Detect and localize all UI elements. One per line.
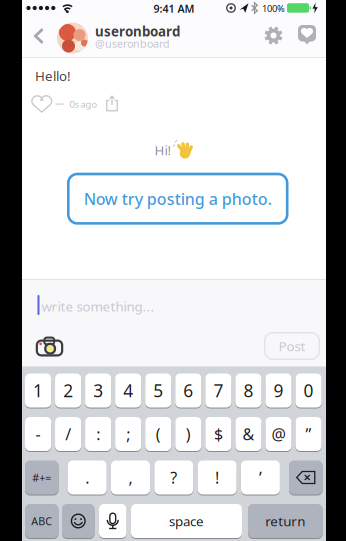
button[interactable]: /: [55, 416, 81, 451]
button[interactable]: 5: [145, 373, 171, 408]
staticText: Post: [278, 337, 305, 355]
staticText: @useronboard: [95, 36, 170, 51]
button[interactable]: 0: [295, 373, 322, 408]
staticText: Hello!: [35, 67, 71, 85]
button[interactable]: Like: [33, 96, 50, 112]
button[interactable]: ;: [115, 416, 141, 451]
staticText: 1: [33, 379, 43, 402]
staticText: &: [242, 423, 254, 445]
button[interactable]: Add photo: [34, 335, 63, 355]
button[interactable]: (: [145, 416, 171, 451]
staticText: 0s ago: [69, 98, 97, 110]
staticText: useronboard: [95, 22, 180, 40]
staticText: -: [36, 423, 41, 445]
staticText: #+=: [32, 470, 51, 485]
staticText: @: [271, 423, 285, 445]
button[interactable]: return: [248, 503, 322, 538]
staticText: 3: [93, 379, 103, 402]
staticText: :: [96, 423, 100, 445]
staticText: 4: [123, 379, 133, 402]
button[interactable]: ”: [295, 416, 322, 451]
button[interactable]: ?: [154, 460, 193, 495]
button[interactable]: ): [175, 416, 201, 451]
staticText: (: [156, 423, 161, 445]
button[interactable]: &: [235, 416, 261, 451]
button[interactable]: !: [198, 460, 237, 495]
staticText: 0: [303, 379, 313, 402]
staticText: 7: [213, 379, 223, 402]
staticText: /: [65, 423, 71, 445]
button[interactable]: ABC: [25, 503, 58, 538]
button[interactable]: -: [25, 416, 51, 451]
staticText: ;: [126, 423, 130, 445]
button[interactable]: Emoji: [62, 503, 94, 538]
staticText: ’: [259, 467, 262, 488]
button[interactable]: 3: [85, 373, 111, 408]
staticText: Hi!: [154, 141, 171, 159]
button[interactable]: Activity: [298, 25, 318, 46]
button[interactable]: 7: [205, 373, 231, 408]
button[interactable]: 6: [175, 373, 201, 408]
staticText: ?: [170, 467, 177, 488]
staticText: Now try posting a photo.: [84, 188, 272, 209]
button[interactable]: Post: [264, 332, 320, 360]
staticText: space: [169, 512, 204, 530]
staticText: 8: [243, 379, 253, 402]
staticText: 9: [273, 379, 283, 402]
staticText: 9:41 AM: [153, 1, 194, 16]
staticText: 100%: [262, 2, 285, 15]
staticText: ABC: [31, 514, 52, 528]
button[interactable]: Delete: [289, 460, 322, 495]
staticText: 5: [153, 379, 163, 402]
button[interactable]: 8: [235, 373, 261, 408]
button[interactable]: #+=: [25, 460, 58, 495]
button[interactable]: 2: [55, 373, 81, 408]
button[interactable]: 4: [115, 373, 141, 408]
button[interactable]: ’: [241, 460, 280, 495]
staticText: return: [265, 512, 305, 530]
button[interactable]: Share: [106, 95, 118, 111]
button[interactable]: Back: [34, 27, 44, 44]
button[interactable]: .: [68, 460, 107, 495]
staticText: ): [186, 423, 191, 445]
button[interactable]: Dictate: [99, 503, 126, 538]
staticText: write something...: [41, 297, 154, 315]
button[interactable]: Settings: [262, 24, 284, 46]
staticText: ”: [305, 423, 311, 445]
button[interactable]: :: [85, 416, 111, 451]
button[interactable]: ,: [111, 460, 150, 495]
staticText: ,: [128, 467, 132, 488]
staticText: 2: [63, 379, 73, 402]
button[interactable]: 1: [25, 373, 51, 408]
staticText: !: [215, 467, 219, 488]
button[interactable]: $: [205, 416, 231, 451]
button[interactable]: space: [131, 503, 242, 538]
staticText: $: [214, 423, 223, 445]
staticText: .: [85, 467, 89, 488]
button[interactable]: @: [265, 416, 291, 451]
button[interactable]: 9: [265, 373, 291, 408]
staticText: 6: [183, 379, 193, 402]
